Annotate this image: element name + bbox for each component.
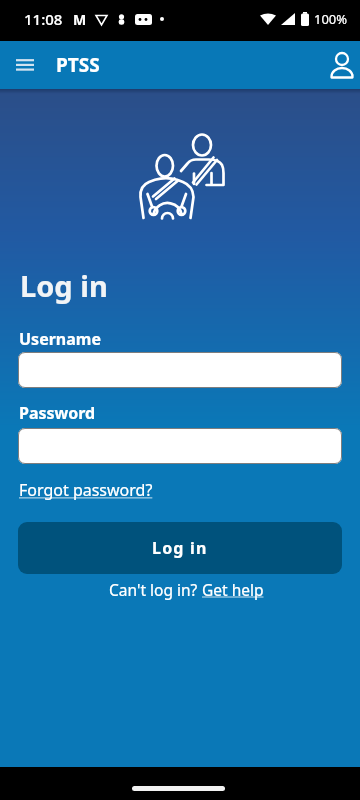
button[interactable]: Forgot password? [19, 479, 153, 501]
staticText: Log in [152, 537, 208, 559]
staticText: 11:08 [24, 9, 63, 29]
staticText: M [73, 10, 87, 29]
button[interactable] [325, 48, 359, 82]
button[interactable]: Get help [202, 579, 264, 600]
button[interactable] [18, 352, 342, 388]
button[interactable] [18, 428, 342, 464]
staticText: PTSS [56, 52, 100, 78]
staticText: Log in [20, 266, 108, 305]
staticText: 100% [314, 10, 348, 28]
staticText: Can't log in? [109, 579, 202, 600]
staticText: Username [19, 328, 101, 350]
button[interactable] [16, 48, 50, 82]
button[interactable]: Log in [18, 522, 342, 574]
staticText: Password [19, 402, 96, 424]
